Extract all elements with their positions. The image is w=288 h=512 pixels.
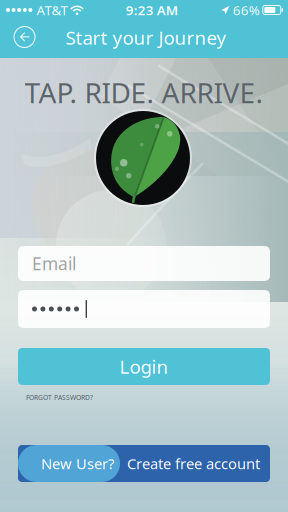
staticText: Email bbox=[32, 252, 76, 275]
button[interactable]: Back bbox=[5, 18, 43, 56]
staticText: New User? bbox=[41, 454, 114, 473]
staticText: FORGOT PASSWORD? bbox=[26, 393, 93, 402]
staticText: 9:23 AM bbox=[126, 1, 178, 19]
staticText: AT&T bbox=[36, 1, 67, 19]
staticText: Create free account bbox=[127, 454, 260, 473]
staticText: TAP. RIDE. ARRIVE. bbox=[24, 74, 263, 111]
staticText: Start your Journey bbox=[65, 25, 226, 50]
staticText: 66% bbox=[233, 1, 260, 19]
button[interactable]: New User? bbox=[18, 445, 270, 482]
staticText: Login bbox=[119, 354, 168, 379]
button[interactable]: FORGOT PASSWORD? bbox=[26, 390, 116, 404]
button[interactable]: Login bbox=[18, 348, 270, 385]
